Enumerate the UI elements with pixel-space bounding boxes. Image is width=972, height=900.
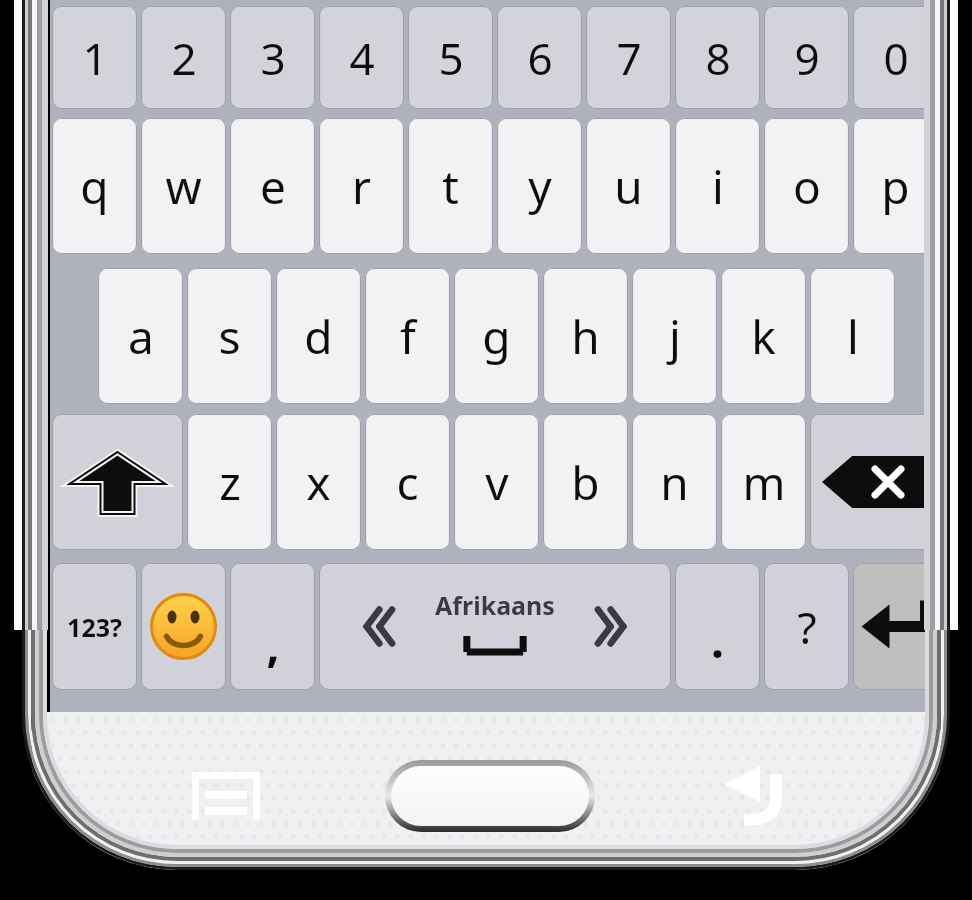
button[interactable]: Emoji [141, 563, 226, 690]
staticText: l [847, 305, 859, 368]
staticText: v [485, 451, 509, 514]
button[interactable]: Back [700, 748, 816, 844]
button[interactable]: p [853, 118, 938, 254]
button[interactable]: c [365, 414, 450, 550]
staticText: e [260, 155, 286, 218]
button[interactable]: 4 [319, 6, 404, 109]
button[interactable]: 1 [52, 6, 137, 109]
button[interactable]: Shift [52, 414, 183, 550]
button[interactable]: 8 [675, 6, 760, 109]
staticText: . [711, 609, 724, 672]
staticText: d [304, 305, 333, 368]
button[interactable]: q [52, 118, 137, 254]
staticText: b [571, 451, 600, 514]
staticText: w [165, 155, 202, 218]
button[interactable]: y [497, 118, 582, 254]
staticText: i [712, 155, 724, 218]
button[interactable]: v [454, 414, 539, 550]
staticText: n [660, 451, 689, 514]
staticText: c [396, 451, 419, 514]
button[interactable]: l [810, 268, 895, 404]
button[interactable]: k [721, 268, 806, 404]
button[interactable]: f [365, 268, 450, 404]
staticText: 0 [883, 28, 909, 88]
button[interactable]: j [632, 268, 717, 404]
button[interactable]: 5 [408, 6, 493, 109]
staticText: m [742, 451, 786, 514]
button[interactable]: 2 [141, 6, 226, 109]
button[interactable]: . [675, 563, 760, 690]
button[interactable]: m [721, 414, 806, 550]
staticText: f [400, 305, 416, 368]
button[interactable]: 9 [764, 6, 849, 109]
staticText: x [306, 451, 331, 514]
staticText: 9 [794, 28, 820, 88]
staticText: g [482, 305, 511, 368]
button[interactable]: e [230, 118, 315, 254]
staticText: j [669, 305, 681, 368]
staticText: 5 [438, 28, 464, 88]
staticText: s [218, 305, 241, 368]
button[interactable]: Home [385, 760, 595, 832]
button[interactable]: u [586, 118, 671, 254]
staticText: r [352, 155, 371, 218]
staticText: k [751, 305, 776, 368]
button[interactable]: a [98, 268, 183, 404]
button[interactable]: Delete [810, 414, 938, 550]
button[interactable]: s [187, 268, 272, 404]
staticText: y [528, 155, 552, 218]
button[interactable]: z [187, 414, 272, 550]
staticText: 7 [616, 28, 642, 88]
staticText: 6 [527, 28, 553, 88]
staticText: u [614, 155, 643, 218]
staticText: a [128, 305, 154, 368]
button[interactable]: h [543, 268, 628, 404]
button[interactable]: o [764, 118, 849, 254]
button[interactable]: 3 [230, 6, 315, 109]
button[interactable]: t [408, 118, 493, 254]
staticText: o [793, 155, 821, 218]
button[interactable]: x [276, 414, 361, 550]
staticText: t [442, 155, 459, 218]
button[interactable]: g [454, 268, 539, 404]
button[interactable]: r [319, 118, 404, 254]
staticText: q [80, 155, 109, 218]
button[interactable]: 7 [586, 6, 671, 109]
button[interactable]: n [632, 414, 717, 550]
staticText: Afrikaans [435, 588, 555, 622]
staticText: 2 [171, 28, 197, 88]
button[interactable]: 0 [853, 6, 938, 109]
button[interactable]: Menu [168, 748, 284, 844]
staticText: 4 [349, 28, 375, 88]
staticText: 3 [260, 28, 286, 88]
staticText: , [266, 613, 280, 676]
button[interactable]: Space, Afrikaans [319, 563, 671, 690]
staticText: p [881, 155, 910, 218]
staticText: h [571, 305, 600, 368]
button[interactable]: b [543, 414, 628, 550]
staticText: 8 [705, 28, 731, 88]
button[interactable]: w [141, 118, 226, 254]
button[interactable]: 6 [497, 6, 582, 109]
staticText: z [219, 451, 241, 514]
button[interactable]: d [276, 268, 361, 404]
staticText: 123? [67, 610, 122, 644]
button[interactable]: ? [764, 563, 849, 690]
staticText: ? [797, 597, 817, 657]
button[interactable]: , [230, 563, 315, 690]
button[interactable]: i [675, 118, 760, 254]
button[interactable]: Enter [853, 563, 938, 690]
staticText: 1 [82, 28, 108, 88]
button[interactable]: 123? [52, 563, 137, 690]
